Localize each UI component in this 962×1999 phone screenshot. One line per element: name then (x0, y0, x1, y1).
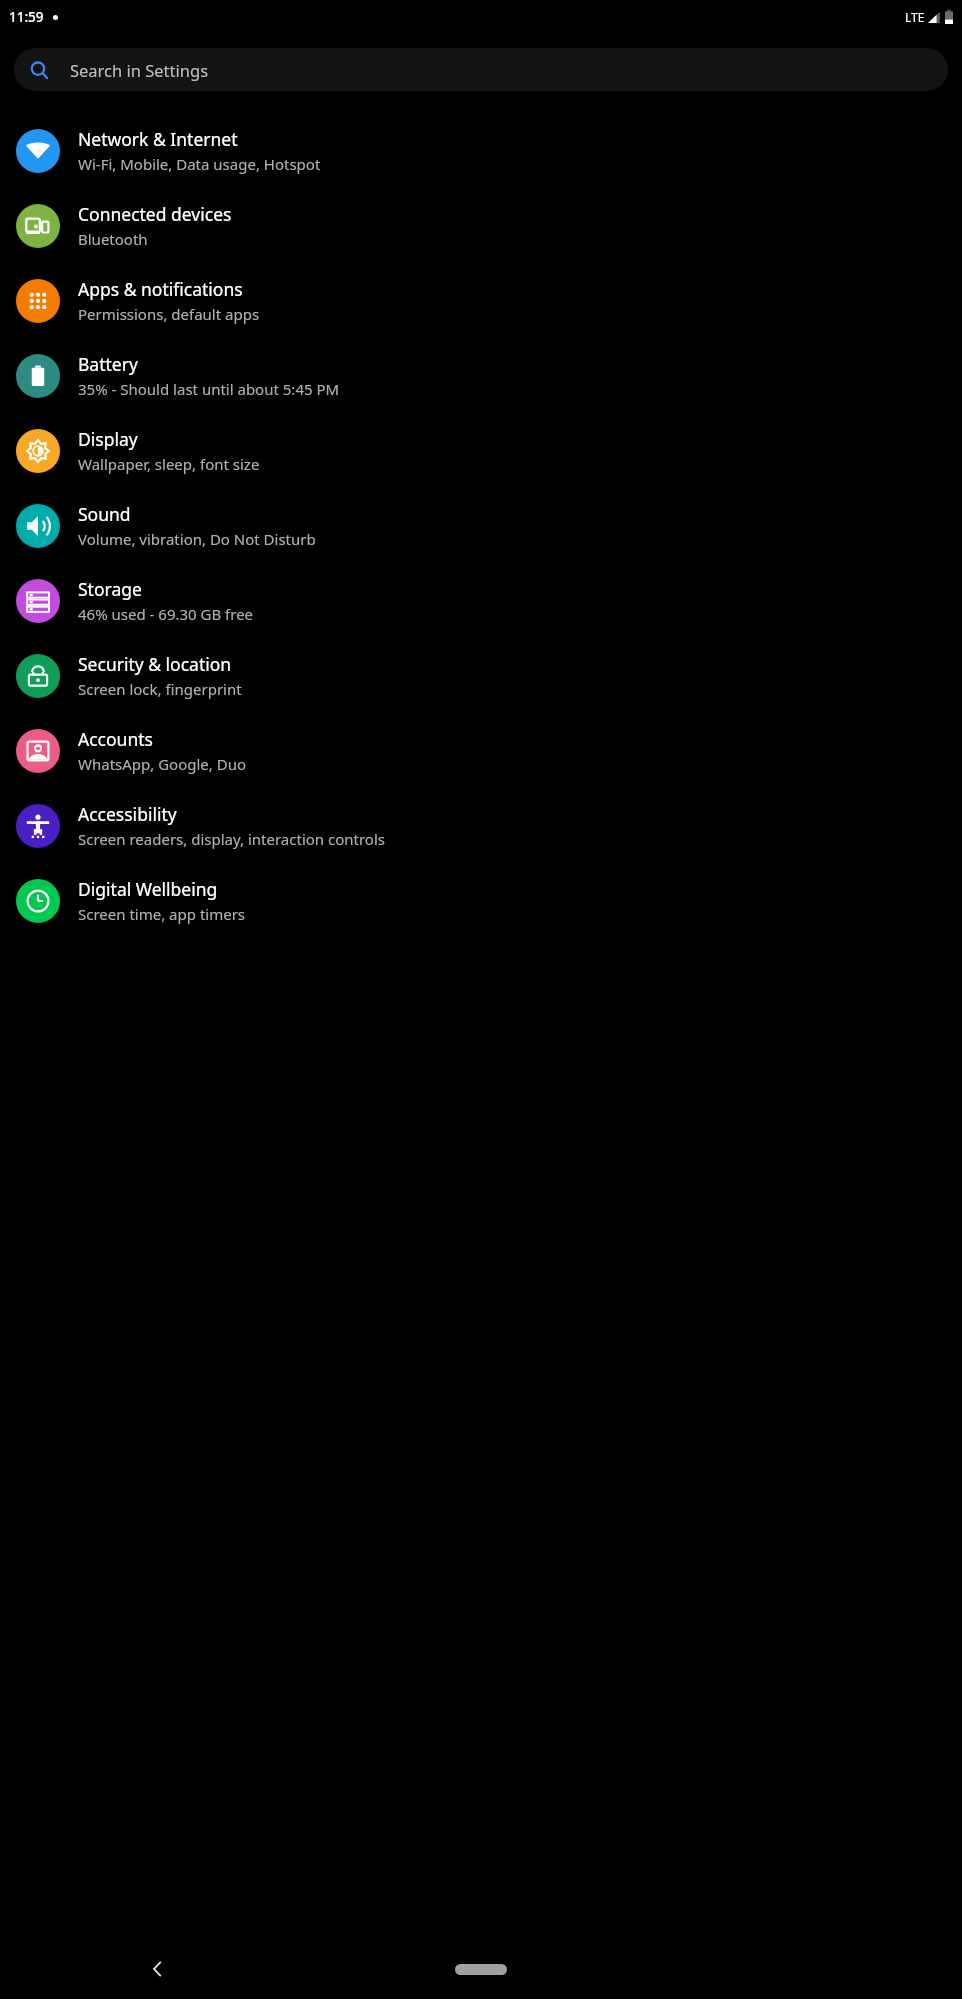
staticText: WhatsApp, Google, Duo (78, 754, 247, 774)
staticText: Sound (78, 502, 131, 526)
staticText: Accounts (78, 727, 153, 751)
staticText: Search in Settings (70, 59, 209, 81)
button[interactable]: Back (136, 1947, 180, 1991)
button[interactable]: Display (0, 413, 962, 488)
button[interactable]: Home (452, 1957, 510, 1981)
staticText: Screen readers, display, interaction con… (78, 829, 385, 849)
staticText: Security & location (78, 652, 232, 676)
button[interactable]: Storage (0, 563, 962, 638)
staticText: Volume, vibration, Do Not Disturb (78, 529, 316, 549)
staticText: Display (78, 427, 138, 451)
button[interactable]: Connected devices (0, 188, 962, 263)
staticText: Digital Wellbeing (78, 877, 218, 901)
staticText: Apps & notifications (78, 277, 243, 301)
staticText: Screen lock, fingerprint (78, 679, 242, 699)
staticText: LTE (905, 9, 925, 25)
button[interactable]: Network & Internet (0, 113, 962, 188)
staticText: 35% - Should last until about 5:45 PM (78, 379, 340, 399)
staticText: Battery (78, 352, 138, 376)
button[interactable]: Battery (0, 338, 962, 413)
button[interactable]: Digital Wellbeing (0, 863, 962, 938)
staticText: Wallpaper, sleep, font size (78, 454, 260, 474)
button[interactable]: Apps & notifications (0, 263, 962, 338)
button[interactable]: Sound (0, 488, 962, 563)
button[interactable]: Accounts (0, 713, 962, 788)
staticText: Permissions, default apps (78, 304, 260, 324)
staticText: Connected devices (78, 202, 232, 226)
staticText: Wi-Fi, Mobile, Data usage, Hotspot (78, 154, 321, 174)
staticText: Bluetooth (78, 229, 148, 249)
button[interactable]: Accessibility (0, 788, 962, 863)
staticText: Accessibility (78, 802, 177, 826)
staticText: Network & Internet (78, 127, 238, 151)
button[interactable]: Search in Settings (14, 48, 948, 91)
staticText: 46% used - 69.30 GB free (78, 604, 254, 624)
staticText: Screen time, app timers (78, 904, 246, 924)
staticText: 11:59 (9, 8, 44, 26)
staticText: Storage (78, 577, 142, 601)
button[interactable]: Security & location (0, 638, 962, 713)
